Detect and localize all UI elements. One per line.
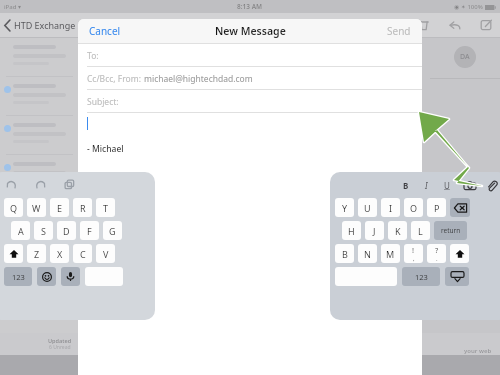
staticText: E [57,202,63,214]
button[interactable]: Y [335,198,354,217]
button[interactable]: Q [4,198,23,217]
button[interactable]: U [358,198,377,217]
staticText: J [373,225,376,237]
staticText: A [18,225,24,237]
button[interactable]: L [411,221,430,240]
staticText: I [425,180,428,191]
staticText: Y [342,202,348,214]
staticText: Z [34,248,40,260]
button[interactable]: Undo [4,177,19,192]
button[interactable]: Shift [450,244,469,263]
button[interactable]: return [434,221,467,240]
staticText: B [342,248,348,260]
button[interactable]: Insert photo [462,178,478,194]
button[interactable]: 123 [402,267,440,286]
button[interactable]: N [358,244,377,263]
button[interactable]: Space [335,267,397,286]
staticText: B [403,180,409,191]
button[interactable]: Space [85,267,123,286]
staticText: Cc/Bcc, From: [87,73,144,85]
staticText: return [441,226,461,235]
button[interactable]: Redo [33,177,48,192]
button[interactable]: I [422,177,431,194]
button[interactable]: S [34,221,53,240]
staticText: iPad ▾ [4,3,22,11]
staticText: L [418,225,423,237]
button[interactable]: Paste [62,177,77,192]
button[interactable]: ? [427,244,446,263]
button[interactable]: Subject: [78,90,422,113]
button[interactable]: D [57,221,76,240]
staticText: F [87,225,92,237]
button[interactable]: U [441,177,453,194]
button[interactable]: Key [450,198,470,217]
button[interactable]: T [96,198,115,217]
staticText: HTD Exchange [14,19,78,31]
button[interactable]: B [335,244,354,263]
button[interactable]: 123 [4,267,32,286]
staticText: U [364,202,371,214]
staticText: M [386,248,395,260]
button[interactable]: Dictate [61,267,80,286]
button[interactable]: C [73,244,92,263]
staticText: H [348,225,355,237]
staticText: To: [87,50,99,62]
staticText: C [80,248,86,260]
staticText: K [395,225,401,237]
staticText: 123 [12,272,25,282]
button[interactable]: A [11,221,30,240]
button[interactable]: X [50,244,69,263]
button[interactable]: J [365,221,384,240]
button[interactable]: Send [384,21,414,41]
staticText: 6 Unread [49,344,71,351]
button[interactable]: E [50,198,69,217]
staticText: ◉ ✶ 100% [454,3,483,11]
staticText: U [444,180,450,191]
button[interactable]: H [342,221,361,240]
button[interactable]: K [388,221,407,240]
button[interactable]: V [96,244,115,263]
staticText: Send [387,24,411,38]
staticText: DA [460,52,470,62]
staticText: - Michael [87,143,124,155]
staticText: W [32,202,41,214]
button[interactable]: Cancel [86,21,124,41]
staticText: Subject: [87,96,119,108]
staticText: Q [10,202,18,214]
button[interactable]: Cc/Bcc, From: [78,67,422,90]
staticText: D [63,225,70,237]
button[interactable]: Shift [4,244,23,263]
button[interactable]: Z [27,244,46,263]
staticText: S [41,225,46,237]
staticText: V [103,248,109,260]
button[interactable]: ! [404,244,423,263]
staticText: R [80,202,86,214]
button[interactable]: P [427,198,446,217]
button[interactable]: G [103,221,122,240]
staticText: P [434,202,440,214]
staticText: Updated [48,337,72,344]
button[interactable]: B [400,177,412,194]
button[interactable]: O [404,198,423,217]
staticText: ? [435,245,439,255]
staticText: ! [412,245,415,255]
staticText: I [389,202,393,214]
staticText: O [410,202,418,214]
button[interactable]: Attach file [484,178,500,194]
button[interactable]: I [381,198,400,217]
staticText: T [103,202,109,214]
staticText: G [109,225,116,237]
button[interactable]: M [381,244,400,263]
button[interactable]: W [27,198,46,217]
staticText: N [364,248,371,260]
staticText: 8:13 AM [237,2,263,11]
button[interactable]: R [73,198,92,217]
staticText: , [413,255,415,263]
button[interactable]: To: [78,44,422,67]
staticText: your web [464,347,492,355]
staticText: 123 [415,272,428,282]
button[interactable]: Key [445,267,469,286]
button[interactable]: Emoji [37,267,56,286]
button[interactable]: F [80,221,99,240]
